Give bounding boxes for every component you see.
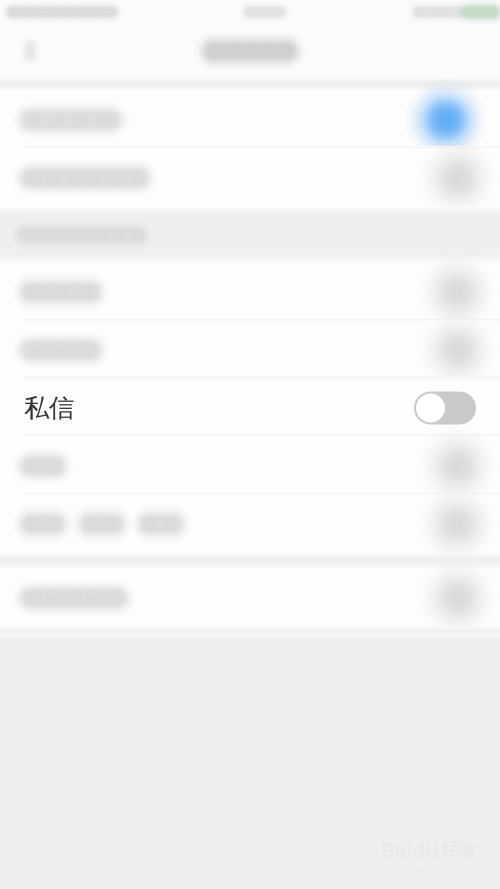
button[interactable]: Notification setting: [0, 91, 500, 149]
button[interactable]: Notification setting: [0, 495, 500, 553]
button[interactable]: Notification setting: [0, 149, 500, 207]
button[interactable]: Notification setting: [0, 321, 500, 379]
button[interactable]: Notification setting: [0, 263, 500, 321]
button[interactable]: 私信: [0, 379, 500, 437]
staticText: 私信: [24, 392, 74, 423]
button[interactable]: Back: [0, 24, 60, 78]
button[interactable]: Notification setting: [0, 569, 500, 627]
button[interactable]: Notification setting: [0, 437, 500, 495]
